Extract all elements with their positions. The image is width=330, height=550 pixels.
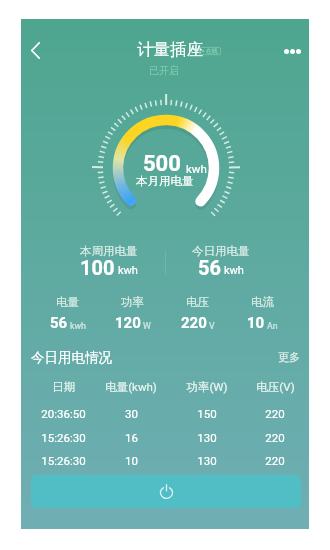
staticText: 本月用电量 [136,174,194,188]
staticText: W [143,321,151,331]
staticText: 已开启 [149,64,179,77]
staticText: An [267,321,278,331]
button[interactable]: Back [18,31,52,69]
staticText: 20:36:50 [41,407,86,420]
button[interactable]: 更多 [278,350,300,364]
staticText: 功率 [121,295,144,309]
staticText: 本周用电量 [80,244,138,258]
staticText: 220 [181,314,207,332]
staticText: kwh [224,264,244,277]
staticText: 日期 [52,380,75,394]
staticText: 220 [265,454,285,467]
staticText: 更多 [278,350,300,364]
staticText: 15:26:30 [41,454,86,467]
staticText: 30 [125,407,138,420]
staticText: 电压 [186,295,209,309]
staticText: kwh [118,264,138,277]
staticText: V [209,321,215,331]
staticText: 150 [197,407,217,420]
staticText: kwh [186,162,207,175]
staticText: 15:26:30 [41,431,86,444]
staticText: 在线 [206,47,218,54]
staticText: kwh [70,321,86,331]
staticText: 130 [197,454,217,467]
staticText: 10 [247,314,265,332]
staticText: 100 [80,256,115,279]
staticText: 功率(W) [186,380,228,394]
staticText: 10 [125,454,138,467]
staticText: 130 [197,431,217,444]
button[interactable]: 今日用电情况 [31,349,112,366]
staticText: 16 [125,431,138,444]
button[interactable]: 20:36:50 [21,402,309,424]
staticText: 电压(V) [256,380,295,394]
staticText: 电流 [251,295,274,309]
staticText: 56 [198,256,221,279]
button[interactable]: More options [273,32,311,70]
button[interactable]: 15:26:30 [21,426,309,448]
staticText: 计量插座 [137,39,203,60]
staticText: 今日用电情况 [31,349,112,366]
staticText: 220 [265,407,285,420]
staticText: 电量(kwh) [105,380,157,394]
staticText: 电量 [56,295,79,309]
staticText: 500 [143,151,181,177]
staticText: 今日用电量 [192,244,250,258]
staticText: 220 [265,431,285,444]
button[interactable]: 15:26:30 [21,449,309,471]
staticText: 120 [115,314,141,332]
staticText: 56 [50,314,68,332]
button[interactable]: Power toggle [31,475,301,508]
